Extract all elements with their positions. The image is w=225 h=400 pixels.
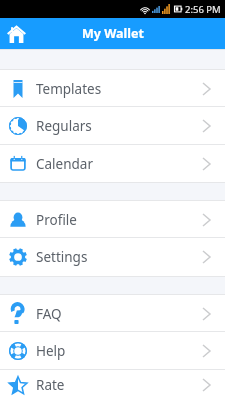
staticText: Regulars — [36, 117, 92, 135]
staticText: FAQ — [36, 305, 62, 323]
button[interactable]: Rate — [0, 370, 225, 400]
staticText: Profile — [36, 211, 77, 229]
staticText: My Wallet — [82, 25, 144, 42]
button[interactable]: FAQ — [0, 295, 225, 332]
button[interactable]: Calendar — [0, 145, 225, 182]
staticText: Templates — [36, 80, 102, 98]
button[interactable]: Profile — [0, 201, 225, 238]
staticText: Calendar — [36, 155, 93, 173]
staticText: Rate — [36, 376, 65, 394]
button[interactable]: Home — [0, 18, 33, 49]
staticText: 2:56 PM — [185, 3, 221, 16]
button[interactable]: Templates — [0, 70, 225, 107]
button[interactable]: Help — [0, 332, 225, 370]
button[interactable]: Regulars — [0, 107, 225, 145]
staticText: Settings — [36, 248, 88, 266]
button[interactable]: Settings — [0, 238, 225, 276]
staticText: Help — [36, 342, 66, 360]
